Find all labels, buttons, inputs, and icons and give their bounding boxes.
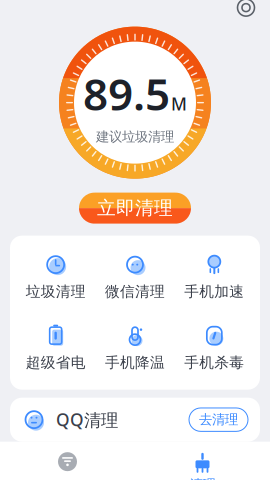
- staticText: 微信清理: [105, 283, 165, 301]
- button[interactable]: WIFI: [0, 446, 135, 480]
- button[interactable]: 立即清理: [79, 193, 191, 224]
- button[interactable]: 超级省电: [16, 321, 95, 376]
- button[interactable]: Settings: [230, 0, 262, 24]
- staticText: 超级省电: [26, 354, 86, 372]
- button[interactable]: 手机降温: [95, 321, 175, 376]
- staticText: 立即清理: [97, 197, 173, 220]
- staticText: 手机杀毒: [184, 354, 244, 372]
- staticText: 手机降温: [105, 354, 165, 372]
- staticText: 垃圾清理: [26, 283, 86, 301]
- staticText: 建议垃圾清理: [96, 129, 174, 145]
- button[interactable]: 微信清理: [95, 250, 175, 305]
- button[interactable]: 清理: [135, 446, 270, 480]
- button[interactable]: 手机加速: [175, 250, 254, 305]
- staticText: 去清理: [199, 411, 238, 428]
- staticText: 清理: [189, 476, 215, 480]
- button[interactable]: 垃圾清理: [16, 250, 95, 305]
- staticText: 手机加速: [184, 283, 244, 301]
- staticText: QQ清理: [56, 408, 118, 431]
- staticText: M: [171, 92, 187, 115]
- button[interactable]: QQ清理: [10, 398, 260, 442]
- staticText: 89.5: [83, 64, 170, 123]
- button[interactable]: 手机杀毒: [175, 321, 254, 376]
